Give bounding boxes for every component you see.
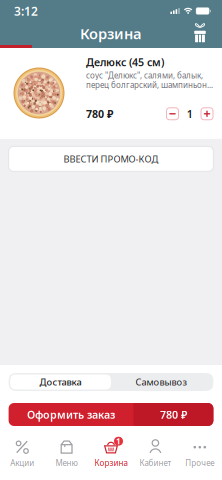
staticText: перец болгарский, шампиньон... [86, 80, 213, 90]
staticText: Оформить заказ [27, 407, 115, 422]
staticText: ВВЕСТИ ПРОМО-КОД [63, 153, 158, 165]
button[interactable]: Доставка [10, 374, 111, 389]
staticText: Прочее [185, 458, 214, 468]
staticText: Доставка [40, 376, 82, 388]
button[interactable]: Кабинет [133, 434, 178, 475]
staticText: Акции [10, 458, 34, 468]
button[interactable]: Меню [44, 434, 89, 475]
staticText: Кабинет [139, 458, 171, 468]
button[interactable]: 1 [89, 434, 133, 475]
staticText: 780 ₽ [160, 407, 187, 422]
staticText: Делюкс (45 см) [86, 55, 164, 69]
button[interactable]: Самовывоз [111, 374, 212, 389]
button[interactable]: Подарки [189, 22, 211, 44]
staticText: соус "Делюкс", салями, балык, [86, 70, 203, 81]
staticText: Корзина [94, 458, 127, 468]
button[interactable]: Увеличить количество [201, 108, 213, 120]
button[interactable]: ВВЕСТИ ПРОМО-КОД [9, 146, 213, 171]
staticText: 1 [187, 107, 193, 121]
staticText: 1 [116, 436, 121, 446]
staticText: 3:12 [14, 3, 38, 19]
staticText: 780 ₽ [86, 107, 113, 121]
button[interactable]: Акции [0, 434, 44, 475]
staticText: Самовывоз [135, 376, 187, 388]
button[interactable]: Уменьшить количество [166, 108, 178, 120]
staticText: Меню [56, 458, 78, 468]
staticText: Корзина [80, 24, 142, 43]
button[interactable]: Прочее [178, 434, 222, 475]
button[interactable]: Оформить заказ [9, 403, 213, 426]
